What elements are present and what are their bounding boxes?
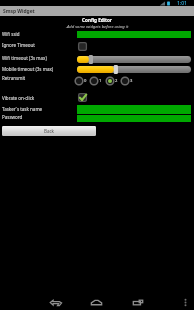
button[interactable]: 1 xyxy=(89,76,104,86)
staticText: 0 xyxy=(84,78,87,84)
button[interactable]: 3 xyxy=(120,76,135,86)
button[interactable]: Checked xyxy=(77,92,88,103)
staticText: Back xyxy=(44,128,55,134)
staticText: Mobile timeout (3s max) xyxy=(2,66,54,72)
staticText: 1:01 xyxy=(177,0,187,7)
button[interactable]: Back xyxy=(2,126,96,136)
button[interactable]: 2 xyxy=(105,76,120,86)
button[interactable]: Home xyxy=(89,296,105,308)
button[interactable]: Slider xyxy=(77,55,191,64)
staticText: Ignore Timeout xyxy=(2,42,35,48)
staticText: 3 xyxy=(130,78,133,84)
staticText: Retransmit xyxy=(2,75,26,81)
button[interactable]: Slider xyxy=(77,65,191,74)
button[interactable]: Recent apps xyxy=(130,296,146,308)
staticText: Vibrate on-click xyxy=(2,95,35,101)
button[interactable]: Back xyxy=(48,296,64,308)
button[interactable]: More options xyxy=(180,296,192,308)
staticText: 1 xyxy=(99,78,102,84)
button[interactable]: Unchecked xyxy=(77,41,88,52)
staticText: 2 xyxy=(115,78,118,84)
staticText: Smsp Widget xyxy=(3,8,35,15)
staticText: Wifi ssid xyxy=(2,31,20,37)
staticText: Wifi timeout (3s max) xyxy=(2,55,47,61)
button[interactable]: 0 xyxy=(74,76,89,86)
staticText: Password xyxy=(2,114,23,120)
staticText: Tasker´s task name xyxy=(2,106,43,112)
staticText: -Add some widgets before using it xyxy=(0,24,194,30)
staticText: Config Editor xyxy=(0,17,194,23)
